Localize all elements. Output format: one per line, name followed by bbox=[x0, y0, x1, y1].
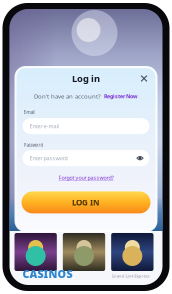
staticText: Don't have an account? bbox=[34, 92, 101, 100]
staticText: E-mail bbox=[23, 109, 34, 115]
staticText: Register Now bbox=[104, 92, 138, 100]
staticText: LOG IN bbox=[72, 197, 100, 208]
staticText: Enter e-mail bbox=[29, 122, 58, 130]
button[interactable]: Close bbox=[138, 73, 156, 84]
staticText: Grand Link Express bbox=[111, 273, 149, 279]
button[interactable]: LOG IN bbox=[15, 191, 156, 213]
button[interactable]: Register Now bbox=[104, 92, 138, 100]
button[interactable]: Forgot your password? bbox=[15, 174, 156, 181]
staticText: Log in bbox=[72, 72, 100, 85]
staticText: Forgot your password? bbox=[58, 174, 113, 181]
staticText: Password bbox=[23, 142, 43, 148]
staticText: CASINOS bbox=[22, 266, 72, 281]
staticText: Enter password bbox=[29, 154, 67, 162]
